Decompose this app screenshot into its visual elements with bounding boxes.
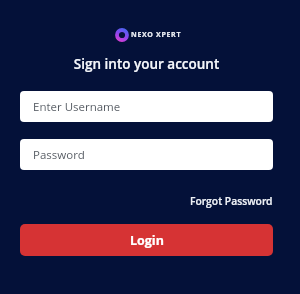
button[interactable]: Enter Username — [20, 91, 273, 122]
staticText: Password — [33, 147, 85, 163]
staticText: Login — [130, 232, 164, 249]
staticText: NEXO XPERT — [131, 30, 182, 40]
staticText: Enter Username — [33, 99, 121, 115]
staticText: Sign into your account — [20, 55, 273, 73]
button[interactable]: Login — [20, 224, 273, 256]
button[interactable]: Forgot Password — [190, 194, 273, 208]
button[interactable]: Password — [20, 139, 273, 170]
